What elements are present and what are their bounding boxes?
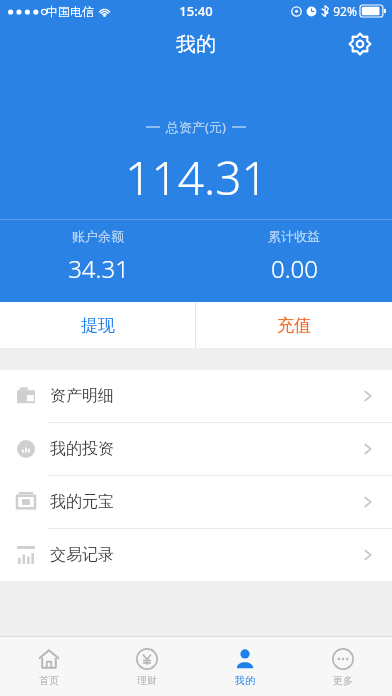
button[interactable]: 累计收益 [196, 228, 392, 285]
button[interactable]: Settings [340, 24, 380, 64]
button[interactable]: 交易记录 [0, 529, 392, 581]
staticText: 0.00 [271, 252, 318, 285]
button[interactable]: 理财 [98, 637, 196, 696]
staticText: 提现 [81, 315, 115, 336]
staticText: 资产明细 [50, 386, 114, 406]
staticText: 交易记录 [50, 545, 114, 565]
button[interactable]: 我的 [196, 637, 294, 696]
button[interactable]: 更多 [294, 637, 392, 696]
button[interactable]: 提现 [0, 302, 195, 348]
staticText: 更多 [333, 674, 353, 687]
button[interactable]: 充值 [196, 302, 392, 348]
staticText: 114.31 [125, 146, 268, 209]
staticText: 充值 [277, 315, 311, 336]
staticText: 我的元宝 [50, 492, 114, 512]
button[interactable]: 账户余额 [0, 228, 196, 285]
staticText: 我的 [235, 674, 255, 687]
button[interactable]: 我的元宝 [0, 476, 392, 528]
button[interactable]: 资产明细 [0, 370, 392, 422]
staticText: 92% [333, 3, 357, 19]
staticText: 34.31 [68, 252, 129, 285]
button[interactable]: 首页 [0, 637, 98, 696]
staticText: 15:40 [179, 2, 213, 20]
button[interactable]: 我的投资 [0, 423, 392, 475]
staticText: 总资产(元) [166, 118, 226, 136]
staticText: 我的投资 [50, 439, 114, 459]
staticText: 账户余额 [72, 228, 124, 244]
staticText: 我的 [176, 32, 216, 57]
staticText: 中国电信 [46, 4, 94, 19]
staticText: 首页 [39, 674, 59, 687]
staticText: 理财 [137, 674, 157, 687]
staticText: 累计收益 [268, 228, 320, 244]
